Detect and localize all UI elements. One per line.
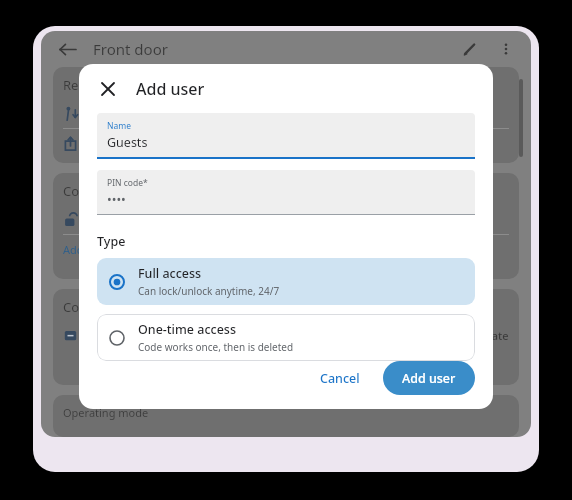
- staticText: Front door: [93, 39, 168, 59]
- staticText: PIN code*: [107, 177, 148, 189]
- button[interactable]: More options: [493, 36, 519, 62]
- button[interactable]: Back: [53, 35, 81, 63]
- staticText: Configuration: [63, 298, 148, 316]
- staticText: Add user: [63, 242, 110, 257]
- staticText: Name: [107, 120, 131, 132]
- staticText: Recent activity: [63, 76, 151, 94]
- button[interactable]: Edit: [457, 36, 483, 62]
- staticText: ••••: [107, 191, 126, 208]
- staticText: Update: [470, 328, 509, 343]
- button[interactable]: PIN code*: [97, 170, 475, 215]
- staticText: Full access: [138, 265, 202, 282]
- staticText: Code works once, then is deleted: [138, 340, 294, 354]
- staticText: One-time access: [138, 321, 237, 338]
- staticText: Can lock/unlock anytime, 24/7: [138, 284, 280, 298]
- staticText: Operating mode: [63, 405, 149, 420]
- button[interactable]: Add user: [383, 361, 475, 395]
- staticText: Add user: [136, 78, 205, 100]
- button[interactable]: One-time access: [97, 314, 475, 361]
- staticText: Guests: [107, 134, 148, 151]
- staticText: Add user: [402, 370, 456, 386]
- staticText: Type: [97, 233, 126, 250]
- button[interactable]: Name: [97, 113, 475, 159]
- staticText: Cancel: [320, 370, 360, 387]
- button[interactable]: Cancel: [307, 363, 373, 394]
- staticText: Control: [63, 182, 109, 200]
- button[interactable]: Close: [93, 74, 123, 104]
- button[interactable]: Full access: [97, 258, 475, 305]
